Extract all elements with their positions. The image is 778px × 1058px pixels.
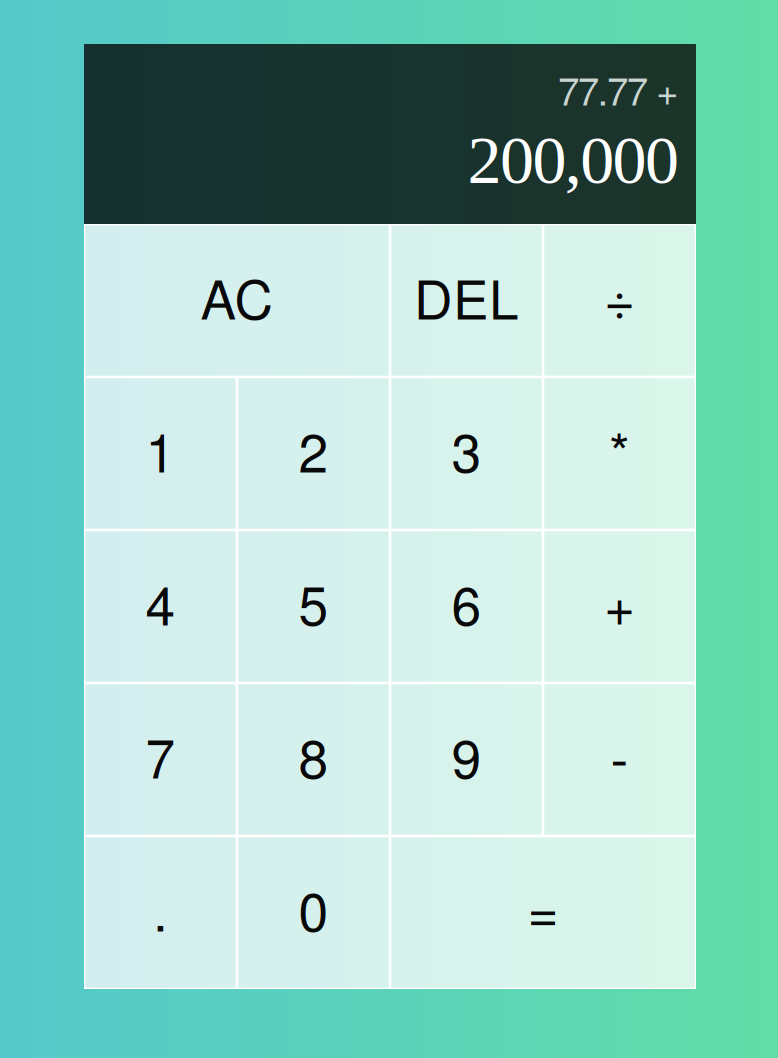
button[interactable]: Subtract [544,684,695,835]
button[interactable]: 0 [238,837,389,988]
button[interactable]: Equals [391,837,695,988]
staticText: = [527,870,558,947]
staticText: . [153,870,168,947]
button[interactable]: 1 [85,378,236,529]
staticText: 4 [145,564,175,641]
staticText: * [609,411,630,488]
button[interactable]: 9 [391,684,542,835]
button[interactable]: 6 [391,531,542,682]
staticText: - [610,717,628,794]
staticText: + [604,564,635,641]
button[interactable]: 5 [238,531,389,682]
staticText: 1 [145,411,175,488]
button[interactable]: Add [544,531,695,682]
button[interactable]: 7 [85,684,236,835]
staticText: AC [200,258,273,335]
staticText: 8 [298,717,328,794]
button[interactable]: 3 [391,378,542,529]
button[interactable]: 8 [238,684,389,835]
button[interactable]: Multiply [544,378,695,529]
staticText: 9 [451,717,481,794]
staticText: 3 [451,411,481,488]
button[interactable]: Decimal point [85,837,236,988]
staticText: 2 [298,411,328,488]
staticText: 6 [451,564,481,641]
button[interactable]: Delete [391,225,542,376]
staticText: 77.77 + [558,61,679,116]
staticText: 0 [298,870,328,947]
staticText: 5 [298,564,328,641]
button[interactable]: 2 [238,378,389,529]
staticText: 200,000 [468,122,679,198]
button[interactable]: Divide [544,225,695,376]
button[interactable]: All clear [85,225,389,376]
staticText: DEL [414,258,519,335]
staticText: 7 [145,717,175,794]
staticText: ÷ [604,258,635,335]
button[interactable]: 4 [85,531,236,682]
